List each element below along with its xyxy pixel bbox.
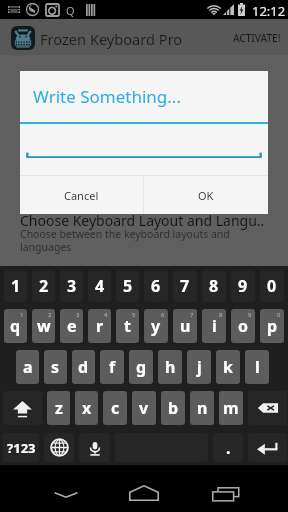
staticText: 1 [11,275,21,297]
button[interactable]: w [32,309,55,343]
button[interactable]: . [213,433,243,462]
staticText: 6 [161,311,165,319]
button[interactable]: x [75,391,98,425]
button[interactable]: f [100,350,124,384]
button[interactable]: j [187,350,211,384]
other: Delete [256,396,280,420]
staticText: n [197,397,208,419]
button[interactable]: Home [120,476,168,510]
button[interactable]: Delete [248,391,287,425]
staticText: Choose between the keyboard layouts and … [20,227,236,254]
button[interactable]: ?123 [3,433,39,462]
button[interactable]: r [88,309,111,343]
staticText: 9 [238,275,248,297]
other: Change language [50,438,69,457]
staticText: m [223,397,239,419]
staticText: 9 [248,311,252,319]
button[interactable]: 2 [32,270,55,302]
staticText: Write Something... [33,85,181,108]
button[interactable]: Back [42,478,90,512]
staticText: w [37,315,51,337]
staticText: t [124,315,131,337]
button[interactable]: s [44,350,67,384]
staticText: 12:12 [252,2,286,20]
button[interactable]: i [202,309,226,343]
staticText: 4 [95,275,105,297]
button[interactable]: g [129,350,153,384]
button[interactable]: k [216,350,240,384]
staticText: Cancel [64,188,99,203]
button[interactable]: u [173,309,197,343]
button[interactable]: c [103,391,127,425]
staticText: k [223,356,233,378]
staticText: a [23,356,33,378]
staticText: c [111,397,120,419]
button[interactable]: n [190,391,214,425]
staticText: 7 [180,275,190,297]
staticText: r [96,315,104,337]
button[interactable]: 6 [144,270,168,302]
button[interactable]: ACTIVATE! [228,24,286,52]
staticText: y [151,315,161,337]
button[interactable]: Change language [44,433,74,462]
staticText: p [267,315,278,337]
staticText: j [197,356,202,378]
staticText: . [226,437,231,459]
button[interactable]: z [47,391,70,425]
button[interactable]: y [144,309,168,343]
button[interactable]: 8 [202,270,226,302]
button[interactable]: 4 [88,270,111,302]
staticText: 5 [132,311,136,319]
staticText: 8 [219,311,223,319]
staticText: 4 [104,311,108,319]
staticText: i [212,315,217,337]
button[interactable]: v [132,391,156,425]
staticText: Choose Keyboard Layout and Langu.. [20,211,265,230]
other: Enter [255,435,281,461]
button[interactable]: Shift [3,391,42,425]
button[interactable]: b [161,391,185,425]
button[interactable]: Voice input [79,433,110,462]
staticText: 5 [123,275,133,297]
other: Voice input [86,439,104,457]
button[interactable]: 7 [173,270,197,302]
button[interactable]: m [219,391,243,425]
button[interactable]: 5 [116,270,139,302]
button[interactable]: o [231,309,255,343]
button[interactable]: 3 [60,270,83,302]
staticText: Q [66,3,75,18]
button[interactable]: q [4,309,27,343]
button[interactable]: Recent apps [201,477,249,511]
button[interactable]: Enter [248,433,287,462]
staticText: ?123 [7,439,36,457]
button[interactable]: Cancel [20,176,143,214]
staticText: 3 [76,311,80,319]
button[interactable]: OK [144,176,268,214]
staticText: Frozen Keyboard Pro [40,29,183,49]
staticText: 6 [151,275,161,297]
staticText: 2 [39,275,49,297]
staticText: 1 [20,311,24,319]
button[interactable]: t [116,309,139,343]
staticText: e [67,315,77,337]
button[interactable]: 9 [231,270,255,302]
staticText: q [10,315,21,337]
staticText: 3 [67,275,77,297]
staticText: l [255,356,260,378]
staticText: u [180,315,191,337]
staticText: x [82,397,92,419]
staticText: o [238,315,249,337]
staticText: d [78,356,89,378]
staticText: b [168,397,179,419]
button[interactable]: h [158,350,182,384]
staticText: 2 [48,311,52,319]
button[interactable]: d [72,350,95,384]
button[interactable]: a [16,350,39,384]
button[interactable]: p [260,309,284,343]
staticText: 8 [209,275,219,297]
button[interactable]: l [245,350,269,384]
button[interactable]: 0 [260,270,284,302]
button[interactable]: 1 [4,270,27,302]
button[interactable]: e [60,309,83,343]
